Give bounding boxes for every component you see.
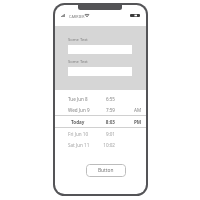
- staticText: 9:01: [92, 131, 115, 137]
- staticText: Some Text: [68, 37, 88, 43]
- staticText: Tue Jun 8: [68, 96, 92, 102]
- staticText: 7:59: [92, 107, 115, 113]
- button[interactable]: Fri Jun 10: [55, 128, 146, 139]
- staticText: AM: [134, 107, 142, 113]
- button[interactable]: Today: [55, 116, 146, 127]
- button[interactable]: Tue Jun 8: [55, 93, 146, 104]
- staticText: PM: [134, 119, 142, 125]
- staticText: Wed Jun 9: [68, 107, 92, 113]
- staticText: 10:02: [92, 142, 115, 148]
- staticText: CARRIER: [69, 14, 85, 19]
- staticText: 8:03: [92, 119, 115, 125]
- staticText: 6:55: [92, 96, 115, 102]
- staticText: Sat Jun 11: [68, 142, 92, 148]
- staticText: Button: [98, 167, 114, 174]
- staticText: Some Text: [68, 59, 88, 65]
- staticText: Today: [71, 119, 92, 125]
- button[interactable]: Wed Jun 9: [55, 104, 146, 115]
- button[interactable]: Sat Jun 11: [55, 139, 146, 150]
- staticText: Fri Jun 10: [68, 131, 92, 137]
- button[interactable]: Button: [86, 164, 126, 177]
